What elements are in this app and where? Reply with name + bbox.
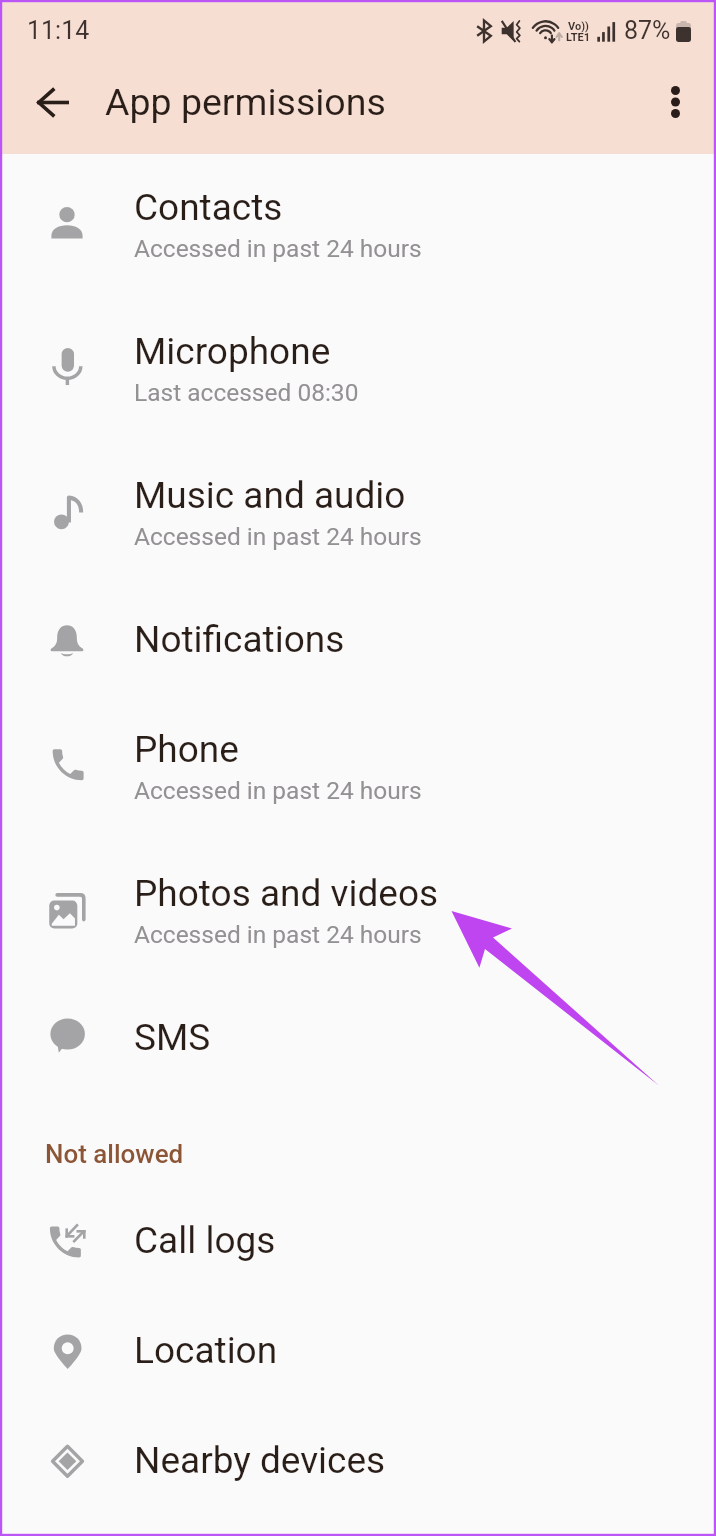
staticText: Not allowed (45, 1139, 184, 1169)
staticText: Nearby devices (134, 1439, 386, 1482)
button[interactable]: Notifications (0, 584, 716, 694)
staticText: Location (134, 1329, 278, 1372)
staticText: 11:14 (27, 16, 90, 45)
staticText: 87% (624, 16, 671, 45)
staticText: Accessed in past 24 hours (134, 522, 422, 551)
button[interactable]: Microphone (0, 296, 716, 440)
button[interactable]: Back (26, 76, 78, 128)
button[interactable]: More options (650, 77, 700, 127)
button[interactable]: Location (0, 1295, 716, 1405)
staticText: Contacts (134, 186, 283, 229)
staticText: Music and audio (134, 474, 406, 517)
staticText: Vo)) (568, 20, 589, 33)
staticText: Phone (134, 728, 239, 771)
button[interactable]: Contacts (0, 152, 716, 296)
staticText: Accessed in past 24 hours (134, 920, 422, 949)
button[interactable]: Photos and videos (0, 838, 716, 982)
staticText: LTE1 (566, 31, 591, 44)
staticText: Accessed in past 24 hours (134, 776, 422, 805)
button[interactable]: Nearby devices (0, 1405, 716, 1515)
staticText: SMS (134, 1016, 211, 1059)
button[interactable]: Music and audio (0, 440, 716, 584)
staticText: Photos and videos (134, 872, 439, 915)
staticText: Call logs (134, 1219, 276, 1262)
staticText: App permissions (105, 80, 386, 124)
button[interactable]: SMS (0, 982, 716, 1092)
staticText: Microphone (134, 330, 331, 373)
button[interactable]: Phone (0, 694, 716, 838)
staticText: Last accessed 08:30 (134, 378, 359, 407)
button[interactable]: Call logs (0, 1185, 716, 1295)
staticText: Accessed in past 24 hours (134, 234, 422, 263)
staticText: Notifications (134, 618, 345, 661)
